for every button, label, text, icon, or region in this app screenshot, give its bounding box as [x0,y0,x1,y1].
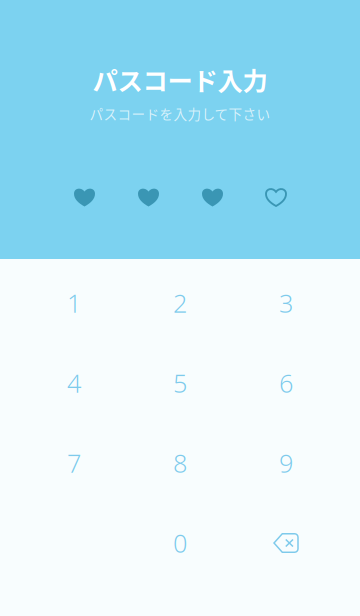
staticText: 6 [279,366,293,400]
staticText: 5 [173,366,187,400]
staticText: 4 [67,366,81,400]
staticText: 8 [173,446,187,480]
button[interactable]: 8 [127,423,233,503]
staticText: パスコードを入力して下さい [89,104,270,123]
staticText: 0 [173,526,187,560]
button[interactable]: 9 [233,423,339,503]
button[interactable]: Delete [233,503,339,583]
button[interactable]: 0 [127,503,233,583]
button[interactable]: 3 [233,263,339,343]
staticText: 3 [279,286,293,320]
button[interactable]: 2 [127,263,233,343]
button[interactable]: 1 [21,263,127,343]
button[interactable]: 7 [21,423,127,503]
button[interactable]: 4 [21,343,127,423]
staticText: 2 [173,286,187,320]
staticText: 1 [67,286,81,320]
button[interactable]: 6 [233,343,339,423]
staticText: 9 [279,446,293,480]
staticText: パスコード入力 [92,61,267,98]
button[interactable]: 5 [127,343,233,423]
staticText: 7 [67,446,81,480]
